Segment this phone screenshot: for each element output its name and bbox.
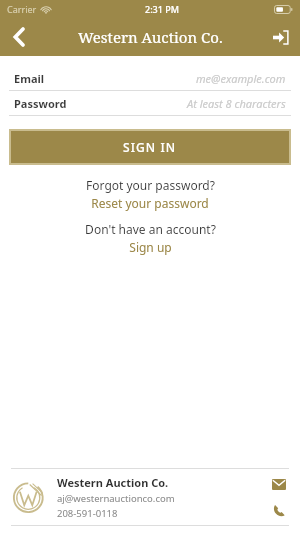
staticText: aj@westernauctionco.com xyxy=(57,492,175,505)
button[interactable]: Call xyxy=(269,500,289,520)
staticText: Western Auction Co. xyxy=(78,27,223,47)
button[interactable]: Back xyxy=(0,18,38,56)
staticText: Email xyxy=(14,71,45,86)
staticText: me@example.com xyxy=(196,71,286,86)
button[interactable]: SIGN IN xyxy=(11,131,289,163)
staticText: Sign up xyxy=(129,239,172,255)
button[interactable]: Email xyxy=(269,474,289,494)
button[interactable]: Password xyxy=(0,91,300,115)
staticText: Forgot your password? xyxy=(86,177,215,193)
button[interactable]: Reset your password xyxy=(85,194,215,212)
button[interactable]: Sign in xyxy=(262,18,300,56)
staticText: Don't have an account? xyxy=(85,221,216,237)
button[interactable]: Email xyxy=(0,66,300,90)
staticText: 208-591-0118 xyxy=(57,507,118,520)
staticText: 2:31 PM xyxy=(145,3,179,15)
button[interactable]: Sign up xyxy=(123,238,178,256)
staticText: Password xyxy=(14,96,67,111)
staticText: Western Auction Co. xyxy=(57,475,169,490)
staticText: SIGN IN xyxy=(123,139,177,155)
staticText: At least 8 characters xyxy=(187,96,286,111)
staticText: Carrier xyxy=(7,3,37,15)
staticText: Reset your password xyxy=(91,195,209,211)
